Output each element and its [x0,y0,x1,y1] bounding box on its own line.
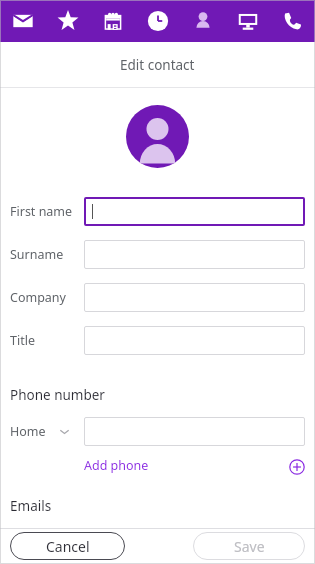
staticText: Add phone [84,457,149,474]
staticText: Surname [10,246,64,263]
button[interactable]: Cancel [10,532,125,560]
button[interactable]: Calendar [90,0,135,42]
staticText: Save [234,537,265,556]
button[interactable]: Add phone [84,457,149,474]
button[interactable]: Mail [0,0,45,42]
staticText: Phone number [10,386,105,404]
staticText: Edit contact [120,56,195,74]
staticText: Cancel [46,537,90,556]
staticText: Emails [10,497,52,515]
staticText: First name [10,203,73,220]
button[interactable]: Add phone [289,459,305,475]
button[interactable]: Phone [270,0,315,42]
button[interactable]: Devices [225,0,270,42]
button[interactable]: Email [0,528,315,557]
button[interactable]: Title [0,326,315,355]
button[interactable]: Surname [0,240,315,269]
button[interactable]: Favourites [45,0,90,42]
staticText: Email [10,534,43,551]
staticText: Title [10,332,35,349]
button[interactable]: People [180,0,225,42]
button[interactable]: Company [0,283,315,312]
button[interactable]: First name [0,197,315,226]
staticText: Company [10,289,66,306]
button[interactable]: Home [10,417,84,446]
button[interactable]: Contact photo [126,105,189,168]
button[interactable]: Save [193,532,305,560]
button[interactable] [84,417,305,446]
staticText: Home [10,423,46,440]
button[interactable]: Recent [135,0,180,42]
